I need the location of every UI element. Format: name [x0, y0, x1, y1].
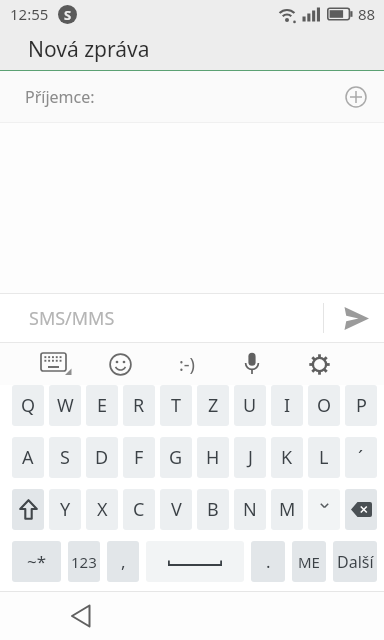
staticText: Další: [337, 551, 374, 573]
staticText: H: [206, 445, 220, 470]
button[interactable]: V: [160, 489, 192, 530]
staticText: ME: [298, 552, 320, 572]
button[interactable]: [344, 85, 368, 109]
button[interactable]: [336, 298, 376, 338]
button[interactable]: ~*: [12, 541, 61, 582]
staticText: :-): [179, 352, 196, 377]
staticText: S: [64, 6, 72, 24]
button[interactable]: ME: [292, 541, 326, 582]
staticText: ,: [121, 550, 126, 573]
button[interactable]: K: [271, 437, 303, 478]
staticText: Y: [60, 497, 71, 522]
button[interactable]: Další: [333, 541, 377, 582]
staticText: W: [57, 393, 74, 418]
button[interactable]: N: [234, 489, 266, 530]
button[interactable]: Příjemce:: [0, 71, 384, 122]
staticText: I: [284, 393, 291, 418]
staticText: P: [356, 393, 367, 418]
staticText: 12:55: [10, 4, 49, 24]
button[interactable]: Y: [49, 489, 81, 530]
staticText: Z: [208, 393, 219, 418]
button[interactable]: [12, 489, 44, 530]
staticText: A: [22, 445, 34, 470]
staticText: ~*: [27, 550, 47, 573]
button[interactable]: :-): [172, 349, 202, 379]
staticText: G: [169, 445, 183, 470]
button[interactable]: B: [197, 489, 229, 530]
staticText: O: [317, 393, 332, 418]
staticText: ´: [358, 445, 364, 470]
button[interactable]: A: [12, 437, 44, 478]
button[interactable]: H: [197, 437, 229, 478]
staticText: J: [248, 445, 253, 470]
staticText: F: [134, 445, 144, 470]
button[interactable]: G: [160, 437, 192, 478]
staticText: S: [60, 445, 70, 470]
staticText: Q: [21, 393, 36, 418]
staticText: 123: [71, 552, 97, 572]
button[interactable]: X: [86, 489, 118, 530]
button[interactable]: U: [234, 385, 266, 426]
button[interactable]: [106, 350, 134, 378]
button[interactable]: E: [86, 385, 118, 426]
staticText: R: [133, 393, 145, 418]
button[interactable]: Z: [197, 385, 229, 426]
button[interactable]: R: [123, 385, 155, 426]
button[interactable]: Q: [12, 385, 44, 426]
button[interactable]: I: [271, 385, 303, 426]
button[interactable]: T: [160, 385, 192, 426]
button[interactable]: W: [49, 385, 81, 426]
button[interactable]: M: [271, 489, 303, 530]
button[interactable]: F: [123, 437, 155, 478]
button[interactable]: [305, 350, 333, 378]
button[interactable]: L: [308, 437, 340, 478]
staticText: L: [319, 445, 329, 470]
button[interactable]: D: [86, 437, 118, 478]
button[interactable]: S: [49, 437, 81, 478]
button[interactable]: [238, 351, 265, 378]
staticText: M: [279, 497, 296, 522]
button[interactable]: ´: [345, 437, 377, 478]
staticText: B: [207, 497, 219, 522]
staticText: N: [243, 497, 257, 522]
staticText: T: [171, 393, 182, 418]
button[interactable]: [146, 541, 244, 582]
staticText: 88: [358, 4, 376, 24]
staticText: .: [266, 550, 271, 573]
staticText: X: [97, 497, 108, 522]
button[interactable]: [39, 349, 73, 379]
button[interactable]: J: [234, 437, 266, 478]
button[interactable]: C: [123, 489, 155, 530]
button[interactable]: P: [345, 385, 377, 426]
staticText: Nová zpráva: [28, 35, 150, 64]
button[interactable]: [62, 598, 98, 634]
staticText: V: [171, 497, 182, 522]
button[interactable]: [308, 489, 340, 530]
button[interactable]: ,: [107, 541, 139, 582]
staticText: K: [281, 445, 293, 470]
staticText: U: [243, 393, 257, 418]
staticText: D: [95, 445, 109, 470]
staticText: Příjemce:: [25, 86, 95, 108]
staticText: SMS/MMS: [29, 306, 115, 331]
staticText: C: [133, 497, 145, 522]
staticText: E: [97, 393, 108, 418]
button[interactable]: O: [308, 385, 340, 426]
button[interactable]: 123: [68, 541, 100, 582]
button[interactable]: .: [251, 541, 285, 582]
button[interactable]: [345, 489, 377, 530]
